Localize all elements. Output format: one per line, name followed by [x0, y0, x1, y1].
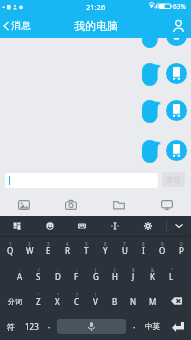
- button[interactable]: 发送: [162, 172, 185, 187]
- button[interactable]: ·: [127, 313, 141, 340]
- button[interactable]: Profile: [166, 13, 191, 38]
- staticText: &: [151, 267, 155, 273]
- button[interactable]: Avatar: [166, 25, 187, 46]
- button[interactable]: 中英: [141, 313, 164, 340]
- staticText: 5: [85, 241, 88, 247]
- staticText: G: [93, 271, 99, 282]
- button[interactable]: 6: [96, 237, 115, 263]
- staticText: R: [65, 245, 70, 256]
- button[interactable]: Toolbox: [3, 216, 31, 236]
- staticText: D: [55, 271, 61, 282]
- staticText: W: [26, 245, 34, 256]
- button[interactable]: ): [105, 263, 124, 289]
- staticText: ": [57, 292, 59, 298]
- button[interactable]: [142, 25, 162, 48]
- button[interactable]: 0: [172, 237, 191, 263]
- button[interactable]: Cursor: [101, 216, 129, 236]
- button[interactable]: 123: [21, 313, 42, 340]
- button[interactable]: Computer: [143, 193, 191, 216]
- staticText: U: [122, 245, 128, 256]
- staticText: 3: [47, 241, 50, 247]
- button[interactable]: ?: [67, 289, 86, 313]
- button[interactable]: 7: [115, 237, 134, 263]
- staticText: B: [112, 296, 118, 307]
- button[interactable]: Space: [57, 319, 126, 334]
- button[interactable]: N: [124, 289, 143, 313]
- button[interactable]: Photos: [0, 193, 47, 216]
- button[interactable]: Files: [95, 193, 143, 216]
- staticText: 消息: [11, 19, 31, 32]
- button[interactable]: 8: [134, 237, 153, 263]
- button[interactable]: ": [48, 289, 67, 313]
- staticText: !: [95, 292, 97, 298]
- button[interactable]: :: [48, 263, 67, 289]
- staticText: P: [179, 245, 184, 256]
- button[interactable]: 分词: [0, 289, 29, 313]
- staticText: 中英: [145, 322, 160, 331]
- staticText: (: [95, 267, 97, 273]
- button[interactable]: (: [86, 263, 105, 289]
- button[interactable]: &: [143, 263, 162, 289]
- button[interactable]: Settings: [134, 216, 162, 236]
- staticText: S: [36, 271, 41, 282]
- staticText: ?: [76, 292, 78, 298]
- staticText: J: [132, 271, 135, 282]
- button[interactable]: Camera: [47, 193, 95, 216]
- staticText: N: [130, 296, 137, 307]
- button[interactable]: [142, 100, 162, 123]
- staticText: I: [142, 245, 145, 256]
- staticText: 9: [161, 241, 164, 247]
- staticText: 0: [180, 241, 183, 247]
- staticText: 符: [7, 322, 15, 332]
- staticText: T: [84, 245, 89, 256]
- button[interactable]: M: [143, 289, 162, 313]
- staticText: K: [150, 271, 155, 282]
- staticText: F: [74, 271, 79, 282]
- staticText: O: [159, 245, 166, 256]
- staticText: V: [93, 296, 98, 307]
- button[interactable]: 4: [58, 237, 77, 263]
- button[interactable]: !: [86, 289, 105, 313]
- staticText: C: [74, 296, 80, 307]
- button[interactable]: Avatar: [166, 140, 187, 161]
- button[interactable]: 符: [0, 313, 21, 340]
- button[interactable]: 1: [0, 237, 20, 263]
- button[interactable]: Avatar: [166, 63, 187, 84]
- button[interactable]: /: [29, 263, 48, 289]
- button[interactable]: Avatar: [166, 100, 187, 121]
- staticText: ·: [133, 321, 136, 333]
- staticText: -: [19, 267, 21, 273]
- button[interactable]: 消息: [0, 13, 36, 38]
- staticText: M: [149, 296, 157, 307]
- button[interactable]: Backspace: [162, 289, 191, 313]
- button[interactable]: ¥: [124, 263, 143, 289]
- staticText: ): [114, 267, 116, 273]
- staticText: Q: [7, 245, 14, 256]
- button[interactable]: [142, 63, 162, 86]
- staticText: E: [46, 245, 51, 256]
- button[interactable]: ": [162, 263, 181, 289]
- staticText: 8: [142, 241, 145, 247]
- button[interactable]: 9: [153, 237, 172, 263]
- staticText: ": [171, 267, 173, 273]
- button[interactable]: Hide: [165, 216, 191, 236]
- button[interactable]: Keyboard: [68, 216, 96, 236]
- button[interactable]: B: [105, 289, 124, 313]
- staticText: A: [17, 271, 23, 282]
- staticText: L: [169, 271, 174, 282]
- button[interactable]: ;: [67, 263, 86, 289]
- button[interactable]: 2: [20, 237, 39, 263]
- button[interactable]: ': [29, 289, 48, 313]
- staticText: Y: [103, 245, 108, 256]
- staticText: :: [57, 267, 59, 273]
- staticText: 7: [123, 241, 126, 247]
- button[interactable]: 3: [39, 237, 58, 263]
- staticText: 我的电脑: [74, 19, 118, 33]
- button[interactable]: ·: [42, 313, 56, 340]
- button[interactable]: [142, 140, 162, 163]
- button[interactable]: Enter: [164, 313, 191, 340]
- button[interactable]: Emoji: [36, 216, 64, 236]
- button[interactable]: [5, 173, 158, 188]
- button[interactable]: -: [10, 263, 29, 289]
- button[interactable]: 5: [77, 237, 96, 263]
